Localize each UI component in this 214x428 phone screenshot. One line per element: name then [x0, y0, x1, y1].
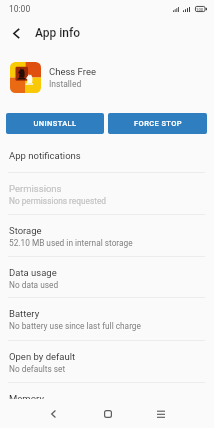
staticText: No battery use since last full charge	[9, 321, 141, 331]
staticText: Memory	[9, 393, 44, 404]
staticText: 100	[196, 7, 204, 12]
button[interactable]: Navigate up	[5, 22, 28, 45]
button[interactable]: Permissions	[0, 173, 214, 215]
staticText: Storage	[9, 225, 42, 236]
staticText: 52.10 MB used in internal storage	[9, 238, 133, 248]
staticText: No memory used	[9, 406, 73, 416]
button[interactable]: Memory	[0, 383, 214, 425]
button[interactable]: Back	[40, 400, 67, 427]
button[interactable]: Open by default	[0, 341, 214, 383]
staticText: 10:00	[9, 4, 31, 14]
staticText: FORCE STOP	[134, 119, 182, 128]
button[interactable]: Data usage	[0, 257, 214, 298]
staticText: Permissions	[9, 183, 62, 194]
button[interactable]: Home	[94, 400, 121, 427]
button[interactable]: FORCE STOP	[108, 113, 207, 134]
staticText: No permissions requested	[9, 196, 107, 206]
button[interactable]: Storage	[0, 215, 214, 257]
staticText: Chess Free	[49, 66, 96, 77]
staticText: No defaults set	[9, 364, 66, 374]
staticText: Open by default	[9, 351, 76, 362]
staticText: App info	[35, 26, 81, 40]
staticText: Installed	[49, 79, 82, 89]
button[interactable]: UNINSTALL	[6, 113, 104, 134]
staticText: No data used	[9, 280, 59, 290]
button[interactable]: App notifications	[0, 134, 214, 173]
staticText: Battery	[9, 308, 40, 319]
staticText: Data usage	[9, 267, 57, 278]
staticText: App notifications	[9, 150, 81, 161]
staticText: UNINSTALL	[33, 119, 77, 128]
button[interactable]: Battery	[0, 298, 214, 341]
button[interactable]: Recent apps	[147, 400, 174, 427]
